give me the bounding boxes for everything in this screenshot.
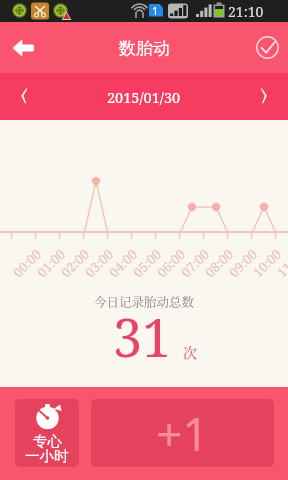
- staticText: 31: [113, 301, 172, 372]
- staticText: 一小时: [25, 447, 69, 465]
- staticText: 2015/01/30: [107, 87, 181, 107]
- staticText: +1: [156, 402, 209, 465]
- staticText: 专心: [33, 432, 62, 450]
- staticText: 今日记录胎动总数: [94, 293, 195, 311]
- staticText: 21:10: [228, 2, 264, 21]
- staticText: 次: [183, 342, 197, 362]
- staticText: 数胎动: [119, 38, 170, 59]
- button[interactable]: 专心: [15, 399, 79, 467]
- button[interactable]: Next day: [240, 73, 288, 120]
- button[interactable]: Previous day: [0, 73, 48, 120]
- staticText: 1: [152, 3, 159, 18]
- button[interactable]: Back: [0, 22, 46, 73]
- button[interactable]: Confirm: [246, 22, 288, 73]
- button[interactable]: +1: [91, 399, 274, 467]
